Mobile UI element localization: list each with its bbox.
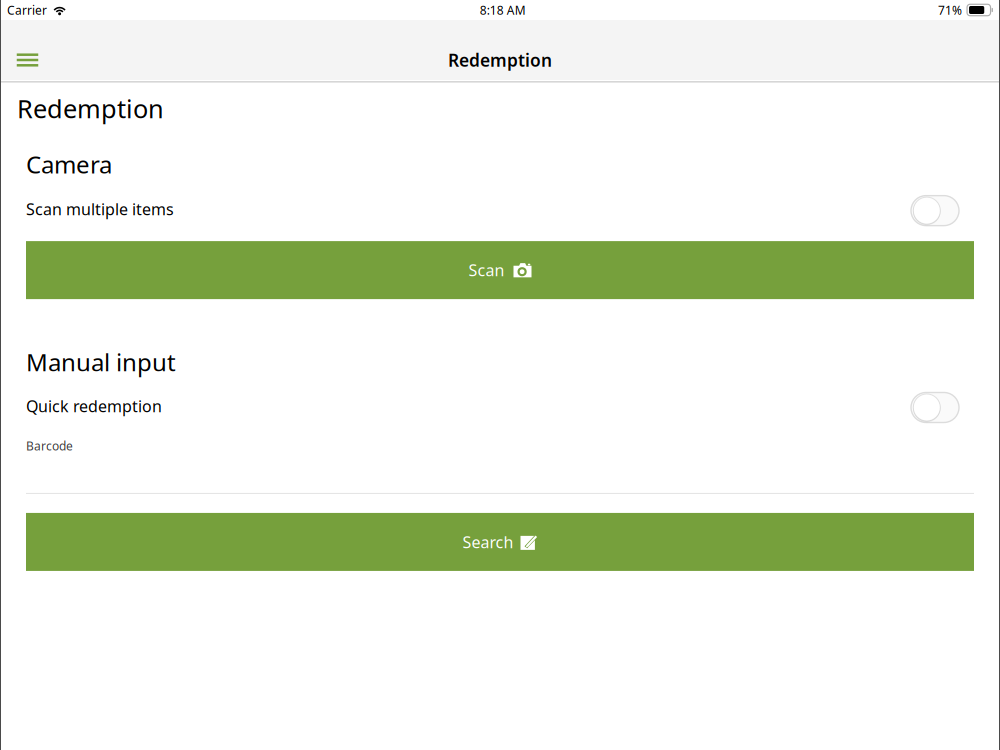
button[interactable]: Scan — [26, 241, 974, 299]
staticText: Scan multiple items — [26, 198, 174, 220]
staticText: Carrier — [7, 2, 47, 18]
staticText: Redemption — [17, 92, 164, 125]
button[interactable]: Quick redemption — [911, 391, 959, 421]
staticText: Quick redemption — [26, 395, 162, 417]
button[interactable]: Scan multiple items — [911, 194, 959, 224]
staticText: Manual input — [26, 346, 176, 378]
button[interactable]: Menu — [5, 38, 50, 82]
staticText: Search — [462, 531, 513, 552]
staticText: Redemption — [448, 48, 552, 71]
staticText: Camera — [26, 148, 112, 180]
staticText: 8:18 AM — [480, 2, 526, 18]
button[interactable]: Search — [26, 513, 974, 571]
staticText: Scan — [468, 259, 504, 281]
staticText: Barcode — [26, 438, 73, 454]
staticText: 71% — [938, 2, 962, 18]
